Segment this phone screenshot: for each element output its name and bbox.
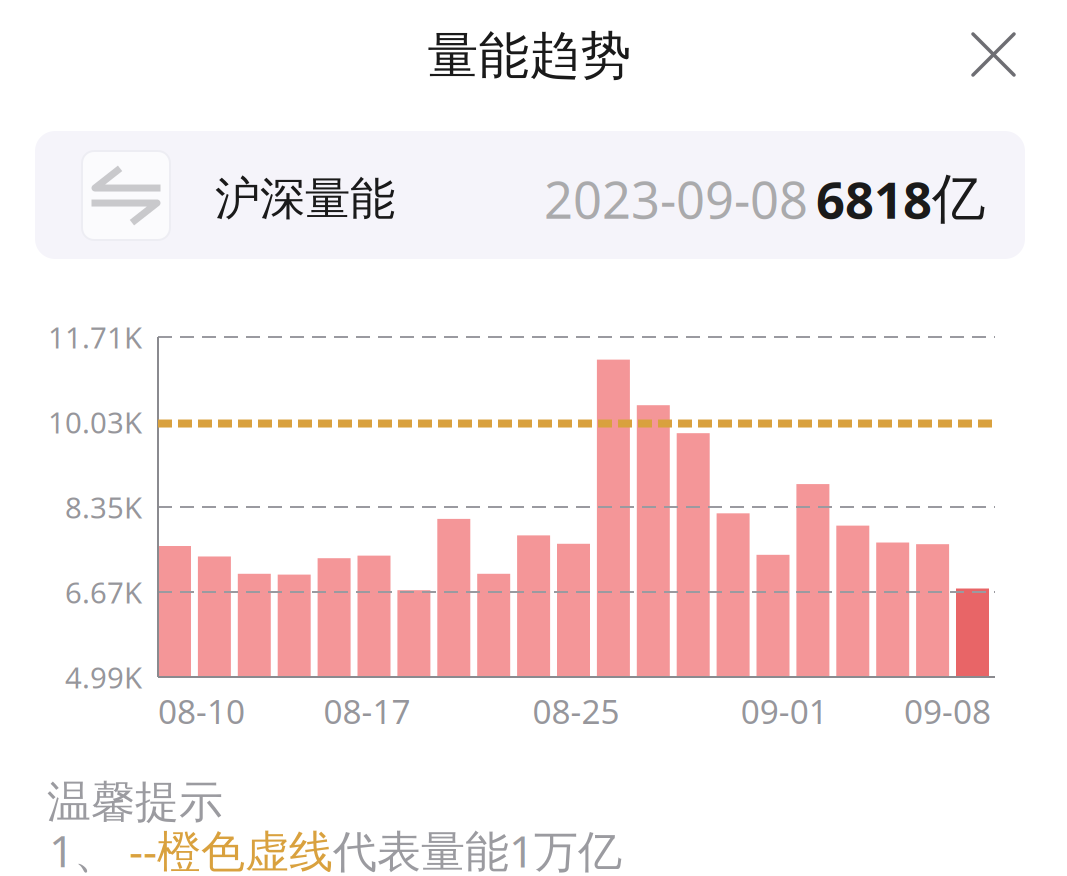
staticText: 6818 xyxy=(816,165,932,233)
staticText xyxy=(118,821,129,876)
staticText: 11.71K xyxy=(48,317,142,356)
staticText: 量能趋势 xyxy=(427,25,631,87)
staticText: 08-17 xyxy=(323,689,410,733)
staticText: 2023-09-08 xyxy=(544,165,808,233)
staticText: 09-08 xyxy=(904,689,991,733)
staticText: 8.35K xyxy=(65,487,142,526)
staticText: 10.03K xyxy=(48,402,142,441)
button[interactable]: 关闭 xyxy=(953,14,1034,95)
staticText: 6.67K xyxy=(65,572,142,611)
staticText: 亿 xyxy=(932,166,985,232)
staticText: 代表量能1万亿 xyxy=(333,821,622,876)
button[interactable]: 沪深量能 xyxy=(35,131,1025,259)
staticText: 沪深量能 xyxy=(215,171,395,227)
staticText: 09-01 xyxy=(741,689,828,733)
staticText: 1、 xyxy=(49,821,118,876)
staticText: 08-10 xyxy=(158,689,245,733)
staticText: 4.99K xyxy=(65,657,142,696)
staticText: 温馨提示 xyxy=(47,775,223,829)
staticText: --橙色虚线 xyxy=(129,821,333,876)
staticText: 08-25 xyxy=(532,689,619,733)
